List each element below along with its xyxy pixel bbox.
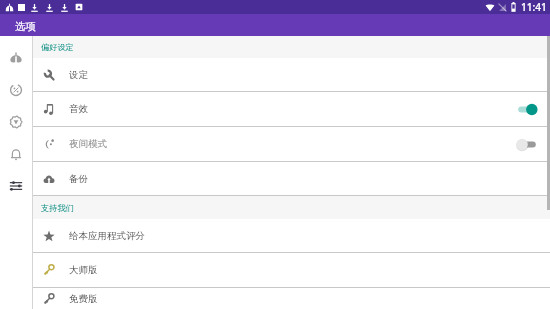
button[interactable]: 大师版: [33, 253, 550, 287]
button[interactable]: Rank: [0, 113, 32, 131]
staticText: 支持我们: [41, 203, 74, 213]
button[interactable]: 免费版: [33, 288, 550, 309]
staticText: 免费版: [69, 293, 98, 305]
button[interactable]: 备份: [33, 162, 550, 195]
button[interactable]: Statistics: [0, 49, 32, 67]
button[interactable]: 音效: [33, 92, 550, 126]
staticText: 夜间模式: [69, 138, 107, 150]
staticText: 给本应用程式评分: [69, 230, 145, 242]
button[interactable]: Percent: [0, 81, 32, 99]
staticText: 11:41: [521, 0, 547, 14]
staticText: 备份: [69, 173, 88, 185]
button[interactable]: 夜间模式: [33, 127, 550, 161]
button[interactable]: Alarm: [0, 145, 32, 163]
staticText: 设定: [69, 69, 88, 81]
staticText: 选项: [15, 20, 36, 33]
staticText: 音效: [69, 103, 88, 115]
button[interactable]: 设定: [33, 58, 550, 91]
button[interactable]: Settings: [0, 177, 32, 195]
staticText: 大师版: [69, 264, 98, 276]
staticText: 偏好设定: [41, 42, 74, 52]
button[interactable]: 给本应用程式评分: [33, 219, 550, 252]
